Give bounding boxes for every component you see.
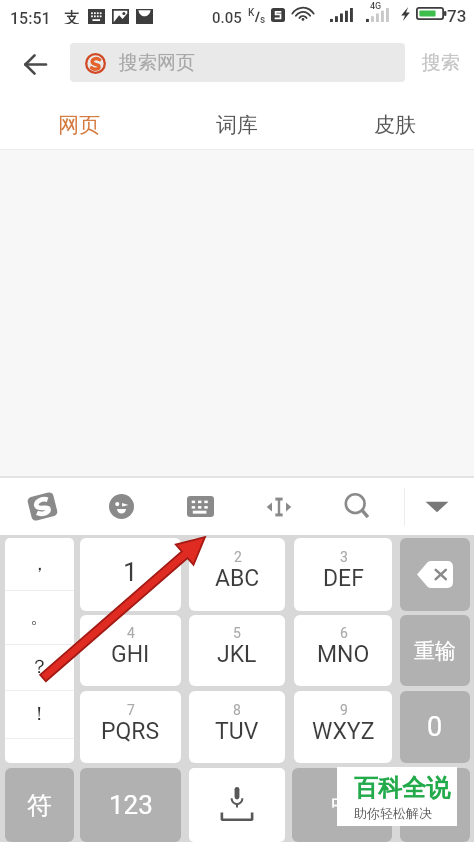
button[interactable] (5, 738, 74, 763)
staticText: 5 (233, 625, 241, 641)
button[interactable]: Space / voice input (189, 768, 285, 842)
button[interactable]: 7 (80, 691, 181, 763)
button[interactable]: Keyboard layout (162, 478, 238, 535)
staticText: 7 (127, 702, 135, 718)
button[interactable]: Hide keyboard (405, 478, 469, 535)
staticText: 助你轻松解决 (354, 805, 432, 821)
staticText: 9 (340, 702, 348, 718)
staticText: JKL (217, 641, 257, 668)
staticText: MNO (317, 641, 370, 668)
button[interactable]: Emoji (83, 478, 159, 535)
button[interactable]: 6 (294, 615, 392, 686)
staticText: 搜索 (422, 51, 460, 75)
staticText: 词库 (216, 112, 258, 138)
staticText: DEF (323, 565, 364, 592)
button[interactable]: 9 (294, 691, 392, 763)
staticText: 6 (340, 625, 348, 641)
staticText: 4G (370, 1, 382, 12)
staticText: 1 (123, 557, 138, 587)
button[interactable]: 。 (5, 590, 74, 644)
staticText: 15:51 (10, 9, 51, 28)
staticText: 网页 (58, 112, 100, 138)
staticText: PQRS (101, 718, 160, 745)
staticText: 符 (27, 790, 52, 821)
button[interactable]: 2 (189, 538, 285, 611)
button[interactable]: Sogou input (4, 478, 80, 535)
button[interactable]: ！ (5, 690, 74, 738)
staticText: 百科全说 (354, 773, 450, 803)
staticText: 8 (233, 702, 241, 718)
button[interactable]: Move cursor (241, 478, 317, 535)
button[interactable]: 4 (80, 615, 181, 686)
button[interactable]: ？ (5, 644, 74, 690)
button[interactable]: Back (6, 42, 64, 86)
button[interactable]: 重输 (400, 615, 470, 686)
button[interactable]: ， (5, 538, 74, 590)
staticText: 0.05 (212, 9, 242, 27)
staticText: K (248, 7, 255, 19)
staticText: 123 (109, 790, 153, 820)
button[interactable]: 皮肤 (316, 96, 474, 154)
staticText: 中 (331, 791, 353, 819)
button[interactable]: Search (319, 478, 395, 535)
staticText: s (260, 14, 266, 26)
button[interactable]: 中 (292, 768, 392, 842)
staticText: 支 (64, 9, 79, 24)
button[interactable]: 5 (189, 615, 285, 686)
staticText: ， (30, 552, 49, 576)
button[interactable]: Enter (400, 768, 470, 842)
staticText: ！ (30, 702, 49, 726)
staticText: 皮肤 (374, 112, 416, 138)
staticText: 0 (427, 711, 443, 743)
staticText: 搜索网页 (119, 51, 195, 75)
button[interactable]: 8 (189, 691, 285, 763)
button[interactable]: 0 (400, 691, 470, 763)
staticText: GHI (111, 641, 150, 668)
button[interactable]: 网页 (0, 96, 158, 154)
staticText: ABC (215, 565, 260, 592)
button[interactable]: 符 (5, 768, 74, 842)
button[interactable]: 3 (294, 538, 392, 611)
button[interactable]: Backspace (400, 538, 470, 611)
staticText: 73 (447, 6, 467, 26)
staticText: 3 (340, 549, 348, 565)
staticText: 2 (234, 549, 242, 565)
staticText: 重输 (414, 638, 456, 664)
button[interactable]: 1 (80, 538, 181, 611)
staticText: WXYZ (312, 718, 375, 745)
button[interactable]: 词库 (158, 96, 316, 154)
button[interactable]: 搜索网页 (70, 43, 405, 82)
staticText: ？ (30, 655, 49, 679)
button[interactable]: 搜索 (412, 43, 470, 82)
staticText: 。 (30, 605, 49, 629)
staticText: TUV (215, 718, 259, 745)
staticText: 4 (127, 625, 135, 641)
button[interactable]: 123 (80, 768, 181, 842)
